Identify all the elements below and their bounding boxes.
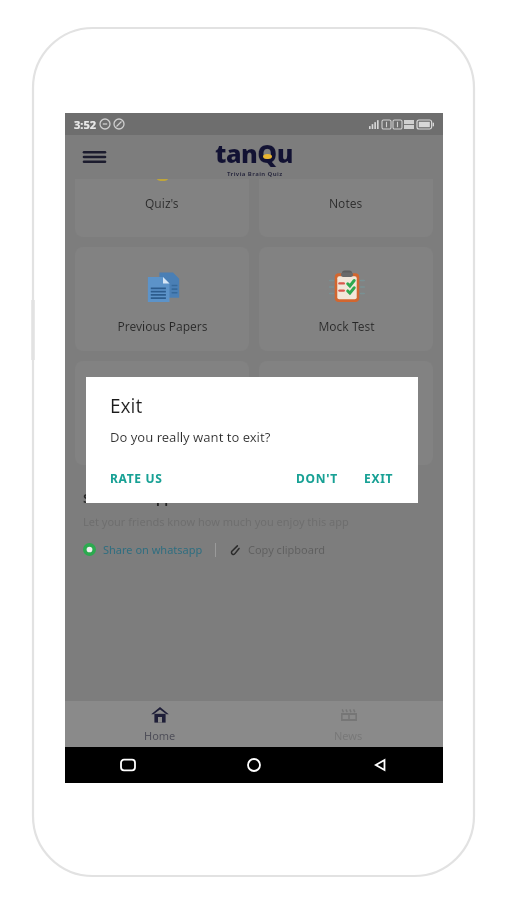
staticText: EXIT xyxy=(364,470,394,486)
staticText: Share the app xyxy=(83,489,173,507)
button[interactable]: Share on whatsapp xyxy=(83,542,203,557)
button[interactable]: Back xyxy=(317,747,443,783)
staticText: DON'T xyxy=(296,470,338,486)
staticText: News xyxy=(334,728,363,743)
button[interactable]: Copy clipboard xyxy=(228,542,326,557)
button[interactable]: Home xyxy=(65,701,254,747)
button[interactable]: Study Zone xyxy=(75,361,249,465)
staticText: Previous Papers xyxy=(117,318,208,334)
button[interactable]: Knowledge Zone xyxy=(259,361,433,465)
button[interactable]: EXIT xyxy=(358,465,400,491)
staticText: Do you really want to exit? xyxy=(110,428,271,446)
staticText: Notes xyxy=(329,195,363,211)
staticText: 3:52 xyxy=(74,117,96,132)
staticText: Mock Test xyxy=(318,318,375,334)
staticText: Share on whatsapp xyxy=(103,542,203,557)
button[interactable]: RATE US xyxy=(104,465,169,491)
button[interactable]: DON'T xyxy=(290,465,344,491)
staticText: Trivia Brain Quiz xyxy=(227,170,283,178)
staticText: Quiz's xyxy=(145,195,179,211)
button[interactable]: Previous Papers xyxy=(75,247,249,351)
button[interactable]: Notes xyxy=(259,179,433,237)
button[interactable]: Home xyxy=(191,747,317,783)
staticText: RATE US xyxy=(110,470,163,486)
staticText: Copy clipboard xyxy=(248,542,326,557)
staticText: Let your friends know how much you enjoy… xyxy=(83,514,349,529)
button[interactable]: Mock Test xyxy=(259,247,433,351)
button[interactable]: Quiz's xyxy=(75,179,249,237)
staticText: tanQu xyxy=(215,136,294,170)
staticText: Home xyxy=(144,728,176,743)
staticText: Study Zone xyxy=(130,432,194,448)
button[interactable]: Open navigation menu xyxy=(79,142,109,172)
button[interactable]: Recent apps xyxy=(65,747,191,783)
staticText: Exit xyxy=(110,393,143,419)
